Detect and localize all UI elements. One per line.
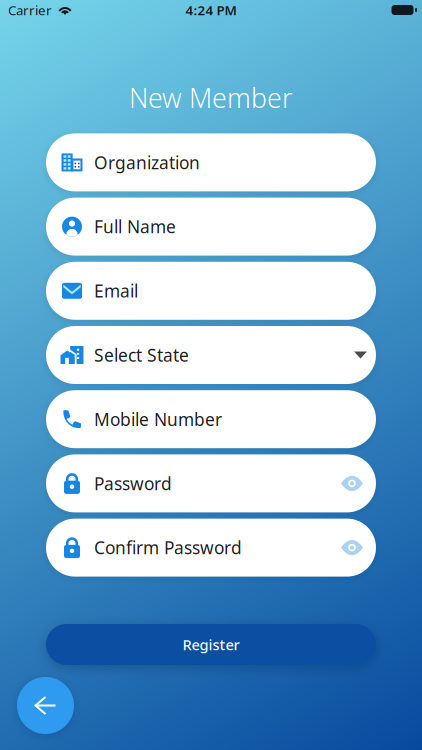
staticText: New Member [129,80,293,115]
button[interactable]: Mobile Number [46,390,376,448]
staticText: Email [94,279,138,302]
staticText: Organization [94,151,200,174]
button[interactable]: Password [46,454,376,512]
button[interactable]: Full Name [46,198,376,256]
staticText: Carrier [8,1,52,19]
staticText: Register [182,635,239,654]
button[interactable]: Email [46,262,376,320]
staticText: Full Name [94,215,176,238]
button[interactable]: Select State [46,326,376,384]
button[interactable]: Organization [46,133,376,191]
button[interactable]: Register [46,624,376,665]
staticText: Mobile Number [94,408,222,431]
staticText: Password [94,472,172,495]
staticText: 4:24 PM [185,1,236,19]
button[interactable]: Back [17,677,74,734]
button[interactable]: Confirm Password [46,519,376,577]
staticText: Select State [94,343,189,366]
staticText: Confirm Password [94,536,242,559]
